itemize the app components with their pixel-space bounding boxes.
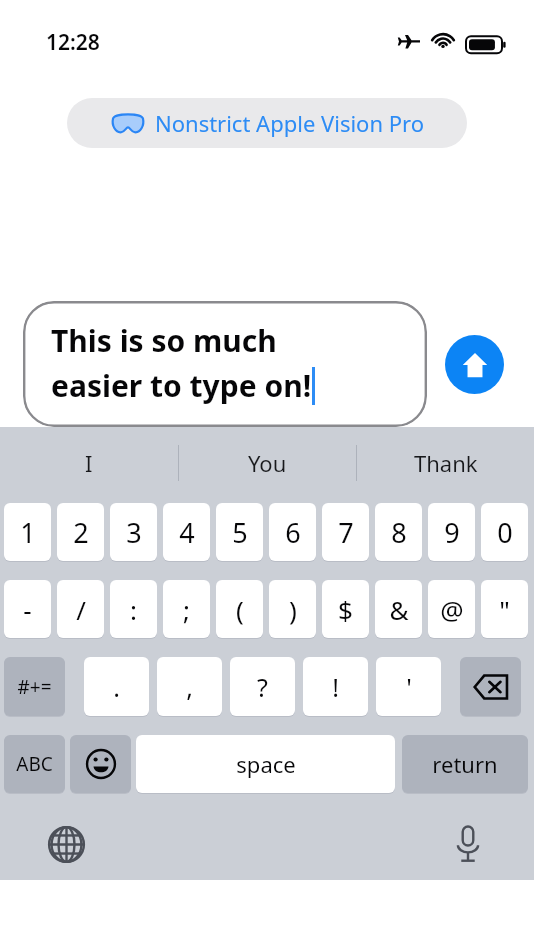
button[interactable]: #+=: [4, 657, 65, 716]
button[interactable]: @: [428, 580, 475, 638]
staticText: 3: [126, 514, 142, 551]
button[interactable]: 7: [322, 503, 369, 561]
staticText: ': [406, 670, 412, 704]
staticText: 6: [285, 514, 301, 551]
button[interactable]: ): [269, 580, 316, 638]
button[interactable]: Dictation: [442, 818, 494, 870]
staticText: :: [130, 592, 137, 627]
button[interactable]: (: [216, 580, 263, 638]
button[interactable]: I: [0, 427, 178, 499]
staticText: ;: [183, 592, 190, 627]
staticText: 2: [73, 514, 89, 551]
button[interactable]: return: [402, 735, 528, 793]
staticText: $: [338, 592, 353, 627]
button[interactable]: You: [179, 427, 356, 499]
button[interactable]: 3: [110, 503, 157, 561]
staticText: Thank: [414, 448, 478, 478]
staticText: 9: [444, 514, 460, 551]
staticText: 5: [232, 514, 248, 551]
staticText: 1: [20, 514, 36, 551]
staticText: ,: [186, 670, 193, 704]
staticText: ): [289, 592, 297, 627]
staticText: #+=: [17, 674, 52, 700]
button[interactable]: .: [84, 657, 149, 716]
staticText: ABC: [16, 751, 53, 777]
staticText: Nonstrict Apple Vision Pro: [155, 108, 424, 138]
button[interactable]: Thank: [357, 427, 534, 499]
button[interactable]: 1: [4, 503, 51, 561]
staticText: &: [389, 592, 409, 627]
staticText: space: [236, 749, 296, 779]
button[interactable]: This is so much: [23, 301, 427, 427]
staticText: 4: [179, 514, 195, 551]
button[interactable]: 9: [428, 503, 475, 561]
button[interactable]: $: [322, 580, 369, 638]
button[interactable]: 2: [57, 503, 104, 561]
button[interactable]: 4: [163, 503, 210, 561]
staticText: I: [85, 448, 93, 478]
staticText: 0: [497, 514, 513, 551]
button[interactable]: /: [57, 580, 104, 638]
staticText: easier to type on!: [51, 365, 312, 406]
button[interactable]: 8: [375, 503, 422, 561]
staticText: This is so much: [51, 320, 277, 361]
button[interactable]: [460, 657, 521, 716]
button[interactable]: -: [4, 580, 51, 638]
button[interactable]: :: [110, 580, 157, 638]
staticText: .: [113, 670, 120, 704]
staticText: !: [332, 670, 339, 704]
staticText: ": [499, 592, 510, 627]
button[interactable]: [70, 735, 131, 793]
button[interactable]: !: [303, 657, 368, 716]
button[interactable]: Change keyboard language: [40, 818, 92, 870]
button[interactable]: Send: [445, 335, 504, 394]
button[interactable]: 5: [216, 503, 263, 561]
button[interactable]: Nonstrict Apple Vision Pro: [67, 98, 467, 148]
staticText: @: [440, 592, 464, 627]
staticText: 8: [391, 514, 407, 551]
button[interactable]: ABC: [4, 735, 65, 793]
button[interactable]: 6: [269, 503, 316, 561]
staticText: You: [248, 448, 287, 478]
button[interactable]: ;: [163, 580, 210, 638]
staticText: /: [76, 592, 86, 627]
staticText: 12:28: [46, 28, 100, 57]
button[interactable]: space: [136, 735, 395, 793]
button[interactable]: 0: [481, 503, 528, 561]
staticText: -: [23, 592, 32, 627]
button[interactable]: ': [376, 657, 441, 716]
staticText: ?: [257, 670, 268, 704]
button[interactable]: &: [375, 580, 422, 638]
staticText: (: [236, 592, 244, 627]
button[interactable]: ": [481, 580, 528, 638]
staticText: 7: [338, 514, 354, 551]
button[interactable]: ,: [157, 657, 222, 716]
button[interactable]: ?: [230, 657, 295, 716]
staticText: return: [432, 749, 498, 779]
